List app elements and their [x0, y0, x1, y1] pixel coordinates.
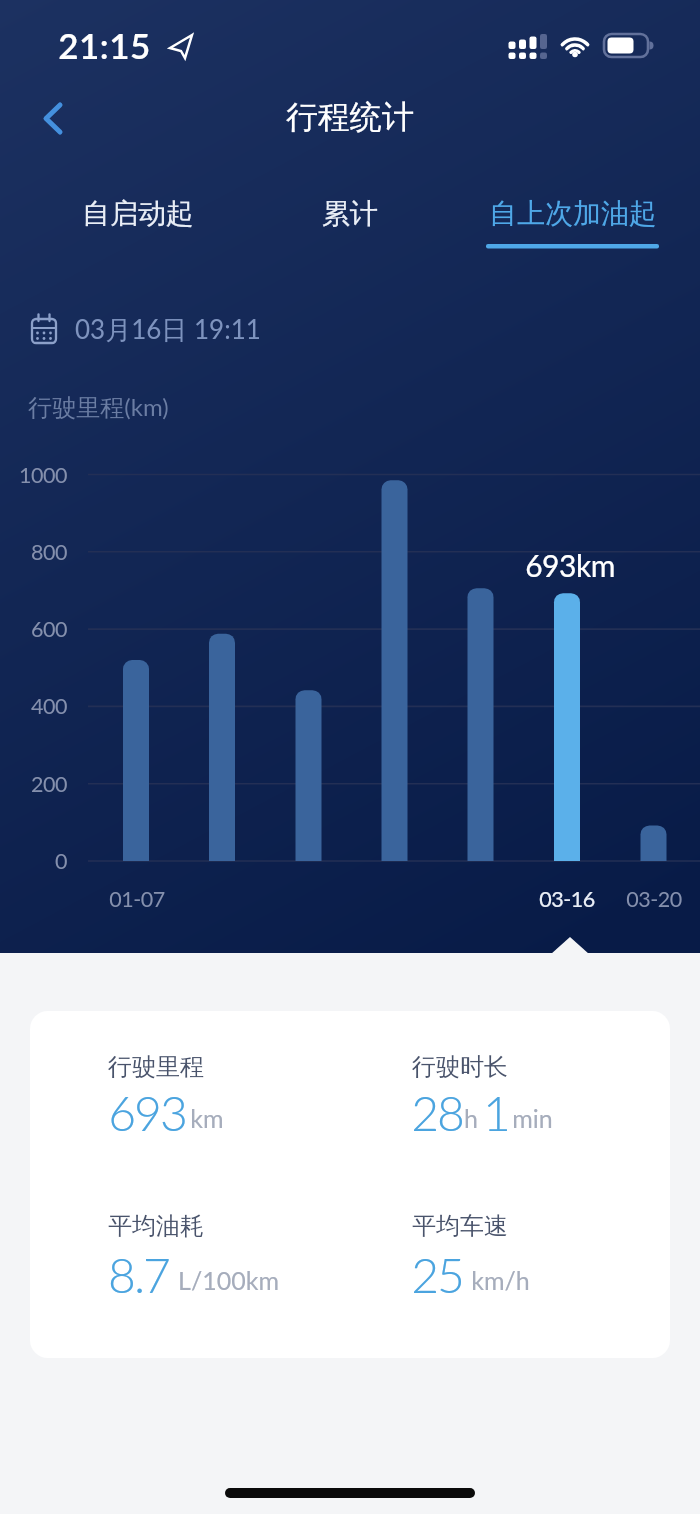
button[interactable]: 自启动起 [60, 183, 215, 243]
staticText: 03-16 [539, 886, 595, 912]
button[interactable]: 自上次加油起 [485, 183, 660, 243]
staticText: 行驶里程 [108, 1052, 204, 1082]
staticText: h [464, 1103, 478, 1133]
button[interactable] [28, 92, 84, 144]
staticText: 25 [411, 1246, 463, 1304]
staticText: 行驶时长 [412, 1052, 508, 1082]
staticText: 8.7 [108, 1246, 169, 1304]
staticText: L/100km [178, 1265, 279, 1295]
staticText: 693km [525, 547, 615, 583]
staticText: 03-20 [626, 886, 682, 912]
staticText: 200 [31, 771, 67, 797]
staticText: km [190, 1103, 224, 1133]
staticText: 400 [31, 693, 67, 719]
staticText: 平均车速 [412, 1211, 508, 1241]
staticText: min [512, 1103, 553, 1133]
staticText: 28 [411, 1084, 463, 1142]
staticText: 693 [108, 1084, 186, 1142]
staticText: 自启动起 [82, 196, 194, 231]
staticText: 01-07 [109, 886, 165, 912]
staticText: 21:15 [58, 24, 151, 66]
staticText: 行程统计 [286, 97, 414, 137]
staticText: 1000 [19, 462, 67, 488]
button[interactable]: 03月16日 19:11 [28, 305, 288, 353]
staticText: 0 [55, 848, 67, 874]
button[interactable]: 累计 [272, 183, 427, 243]
staticText: 03月16日 19:11 [75, 313, 261, 346]
staticText: 平均油耗 [108, 1211, 204, 1241]
staticText: 累计 [322, 196, 378, 231]
staticText: 600 [31, 616, 67, 642]
staticText: 自上次加油起 [489, 196, 657, 231]
staticText: 行驶里程(km) [28, 392, 169, 423]
staticText: km/h [471, 1265, 530, 1295]
staticText: 1 [483, 1084, 511, 1142]
staticText: 800 [31, 539, 67, 565]
